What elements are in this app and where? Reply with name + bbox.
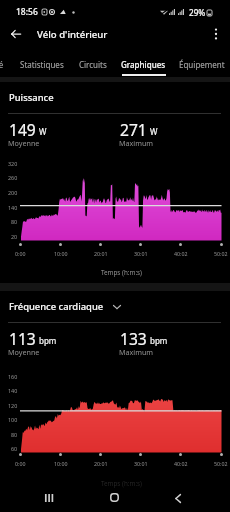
staticText: Fréquence cardiaque xyxy=(9,300,104,313)
staticText: 140 xyxy=(8,204,18,211)
staticText: 100 xyxy=(8,416,18,423)
staticText: 30:01 xyxy=(134,250,148,257)
button[interactable]: Statistiques xyxy=(20,59,64,70)
staticText: Équipement xyxy=(179,59,225,70)
staticText: Maximum xyxy=(119,347,154,357)
staticText: 20:01 xyxy=(94,250,108,257)
button[interactable]: Back xyxy=(163,483,193,512)
staticText: Graphiques xyxy=(121,59,166,70)
staticText: Vélo d'intérieur xyxy=(37,28,108,41)
staticText: 60 xyxy=(11,445,18,452)
button[interactable]: Recent apps xyxy=(34,483,64,512)
button[interactable]: Home xyxy=(99,482,129,512)
staticText: 271 xyxy=(120,119,147,140)
staticText: Moyenne xyxy=(8,347,40,357)
staticText: 120 xyxy=(8,402,18,409)
staticText: 10:00 xyxy=(54,250,68,257)
button[interactable]: Fréquence cardiaque xyxy=(9,300,121,313)
staticText: Statistiques xyxy=(20,59,64,70)
staticText: 10:00 xyxy=(54,460,68,467)
staticText: Maximum xyxy=(119,138,154,148)
staticText: Temps (h:m:s) xyxy=(101,479,142,488)
staticText: 260 xyxy=(8,174,18,181)
staticText: 80 xyxy=(11,218,18,225)
staticText: 30:01 xyxy=(134,460,148,467)
staticText: Circuits xyxy=(79,59,107,70)
staticText: 0:00 xyxy=(15,250,26,257)
staticText: Puissance xyxy=(9,91,54,104)
staticText: bpm xyxy=(150,335,168,346)
staticText: 18:56 xyxy=(16,6,38,18)
staticText: W xyxy=(150,126,158,137)
staticText: W xyxy=(39,126,47,137)
staticText: 0:00 xyxy=(15,460,26,467)
staticText: 200 xyxy=(8,189,18,196)
button[interactable]: Puissance xyxy=(9,91,54,104)
staticText: 50:02 xyxy=(214,460,228,467)
staticText: 29% xyxy=(189,7,206,18)
staticText: Temps (h:m:s) xyxy=(101,268,142,277)
staticText: 113 xyxy=(9,328,36,349)
staticText: 80 xyxy=(11,431,18,438)
button[interactable]: Graphiques xyxy=(121,59,166,70)
button[interactable]: Circuits xyxy=(79,59,107,70)
staticText: 20:01 xyxy=(94,460,108,467)
staticText: 160 xyxy=(8,373,18,380)
staticText: 40:02 xyxy=(174,460,188,467)
staticText: Moyenne xyxy=(8,138,40,148)
button[interactable]: More options xyxy=(204,22,228,46)
staticText: Résumé xyxy=(0,59,4,70)
button[interactable]: Équipement xyxy=(179,59,225,70)
button[interactable]: Résumé xyxy=(0,59,4,70)
staticText: 50:02 xyxy=(214,250,228,257)
staticText: 20 xyxy=(11,233,18,240)
staticText: 133 xyxy=(120,328,147,349)
staticText: 320 xyxy=(8,160,18,167)
staticText: 149 xyxy=(9,119,36,140)
button[interactable]: Back xyxy=(4,22,28,46)
staticText: 140 xyxy=(8,387,18,394)
staticText: bpm xyxy=(39,335,57,346)
staticText: 40:02 xyxy=(174,250,188,257)
